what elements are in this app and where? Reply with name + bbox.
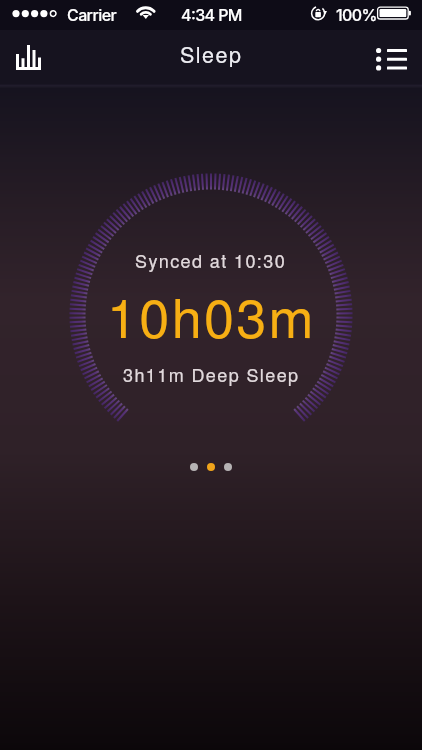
staticText: 10h03m	[107, 276, 316, 353]
button[interactable]: Page 2	[207, 463, 215, 471]
button[interactable]: Statistics	[0, 31, 57, 87]
staticText: 4:34 PM	[181, 5, 242, 24]
staticText: 100%	[336, 5, 377, 24]
button[interactable]: Page 1	[190, 463, 198, 471]
staticText: Synced at 10:30	[135, 247, 287, 273]
staticText: Carrier	[67, 5, 117, 24]
staticText: 3h11m Deep Sleep	[123, 361, 300, 387]
button[interactable]: Menu	[365, 31, 422, 87]
staticText: Sleep	[180, 38, 243, 69]
button[interactable]: Page 3	[224, 463, 232, 471]
